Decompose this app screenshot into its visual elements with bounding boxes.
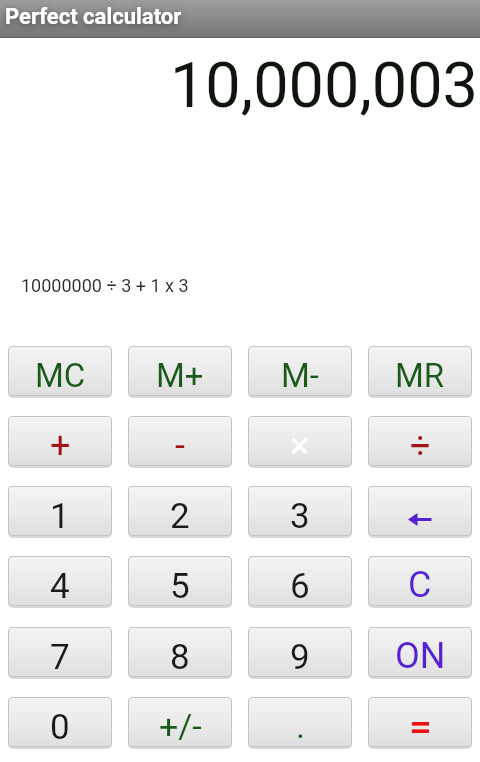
staticText: MR bbox=[395, 356, 445, 395]
button[interactable]: 1 bbox=[8, 486, 112, 536]
staticText: ÷ bbox=[410, 425, 431, 466]
staticText: M- bbox=[281, 356, 319, 395]
staticText: 10000000 ÷ 3 + 1 x 3 bbox=[21, 275, 189, 296]
button[interactable]: ON bbox=[368, 627, 472, 677]
button[interactable]: C bbox=[368, 556, 472, 606]
button[interactable]: 5 bbox=[128, 556, 232, 606]
staticText: - bbox=[175, 425, 185, 466]
button[interactable]: × bbox=[248, 416, 352, 466]
button[interactable] bbox=[368, 697, 472, 747]
button[interactable]: 8 bbox=[128, 627, 232, 677]
button[interactable]: 9 bbox=[248, 627, 352, 677]
staticText: 5 bbox=[170, 566, 190, 606]
button[interactable]: +/- bbox=[128, 697, 232, 747]
button[interactable]: + bbox=[8, 416, 112, 466]
button[interactable]: 6 bbox=[248, 556, 352, 606]
button[interactable]: 7 bbox=[8, 627, 112, 677]
button[interactable]: M+ bbox=[128, 346, 232, 396]
staticText: 9 bbox=[290, 637, 310, 677]
staticText: MC bbox=[35, 356, 86, 395]
button[interactable] bbox=[368, 486, 472, 536]
staticText: 1 bbox=[50, 496, 70, 536]
staticText: +/- bbox=[159, 706, 202, 746]
button[interactable]: 2 bbox=[128, 486, 232, 536]
button[interactable]: - bbox=[128, 416, 232, 466]
staticText: 0 bbox=[50, 707, 70, 747]
button[interactable]: MR bbox=[368, 346, 472, 396]
button[interactable]: ÷ bbox=[368, 416, 472, 466]
button[interactable]: . bbox=[248, 697, 352, 747]
staticText: 6 bbox=[290, 566, 310, 606]
button[interactable]: 0 bbox=[8, 697, 112, 747]
staticText: Perfect calculator bbox=[5, 4, 182, 30]
button[interactable]: 3 bbox=[248, 486, 352, 536]
staticText: C bbox=[408, 564, 432, 606]
button[interactable]: MC bbox=[8, 346, 112, 396]
staticText: 2 bbox=[170, 496, 190, 536]
staticText: 8 bbox=[170, 637, 190, 677]
staticText: ON bbox=[395, 635, 446, 677]
staticText: 7 bbox=[50, 637, 70, 677]
staticText: + bbox=[50, 425, 71, 466]
staticText: . bbox=[296, 706, 305, 746]
button[interactable]: M- bbox=[248, 346, 352, 396]
staticText: 10,000,003 bbox=[0, 49, 478, 123]
button[interactable]: 4 bbox=[8, 556, 112, 606]
staticText: × bbox=[290, 425, 310, 466]
staticText: 4 bbox=[50, 566, 70, 606]
staticText: 3 bbox=[290, 496, 310, 536]
staticText: M+ bbox=[156, 356, 204, 395]
